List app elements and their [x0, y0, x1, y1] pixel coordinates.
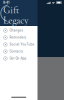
- staticText: acy: [1, 33, 16, 48]
- staticText: Social YouTube: [10, 43, 35, 46]
- button[interactable]: Contacts: [0, 48, 37, 55]
- staticText: Legacy: [3, 15, 28, 26]
- button[interactable]: Changes: [0, 27, 37, 34]
- staticText: Changes: [10, 29, 24, 32]
- staticText: Get On App: [10, 57, 27, 60]
- button[interactable]: Reminders: [0, 34, 37, 41]
- staticText: Reminders: [10, 36, 27, 39]
- staticText: 9:41: [3, 0, 9, 5]
- staticText: Gift: [3, 4, 19, 16]
- button[interactable]: Get On App: [0, 55, 37, 62]
- button[interactable]: Social YouTube: [0, 41, 37, 48]
- staticText: Contacts: [10, 50, 24, 53]
